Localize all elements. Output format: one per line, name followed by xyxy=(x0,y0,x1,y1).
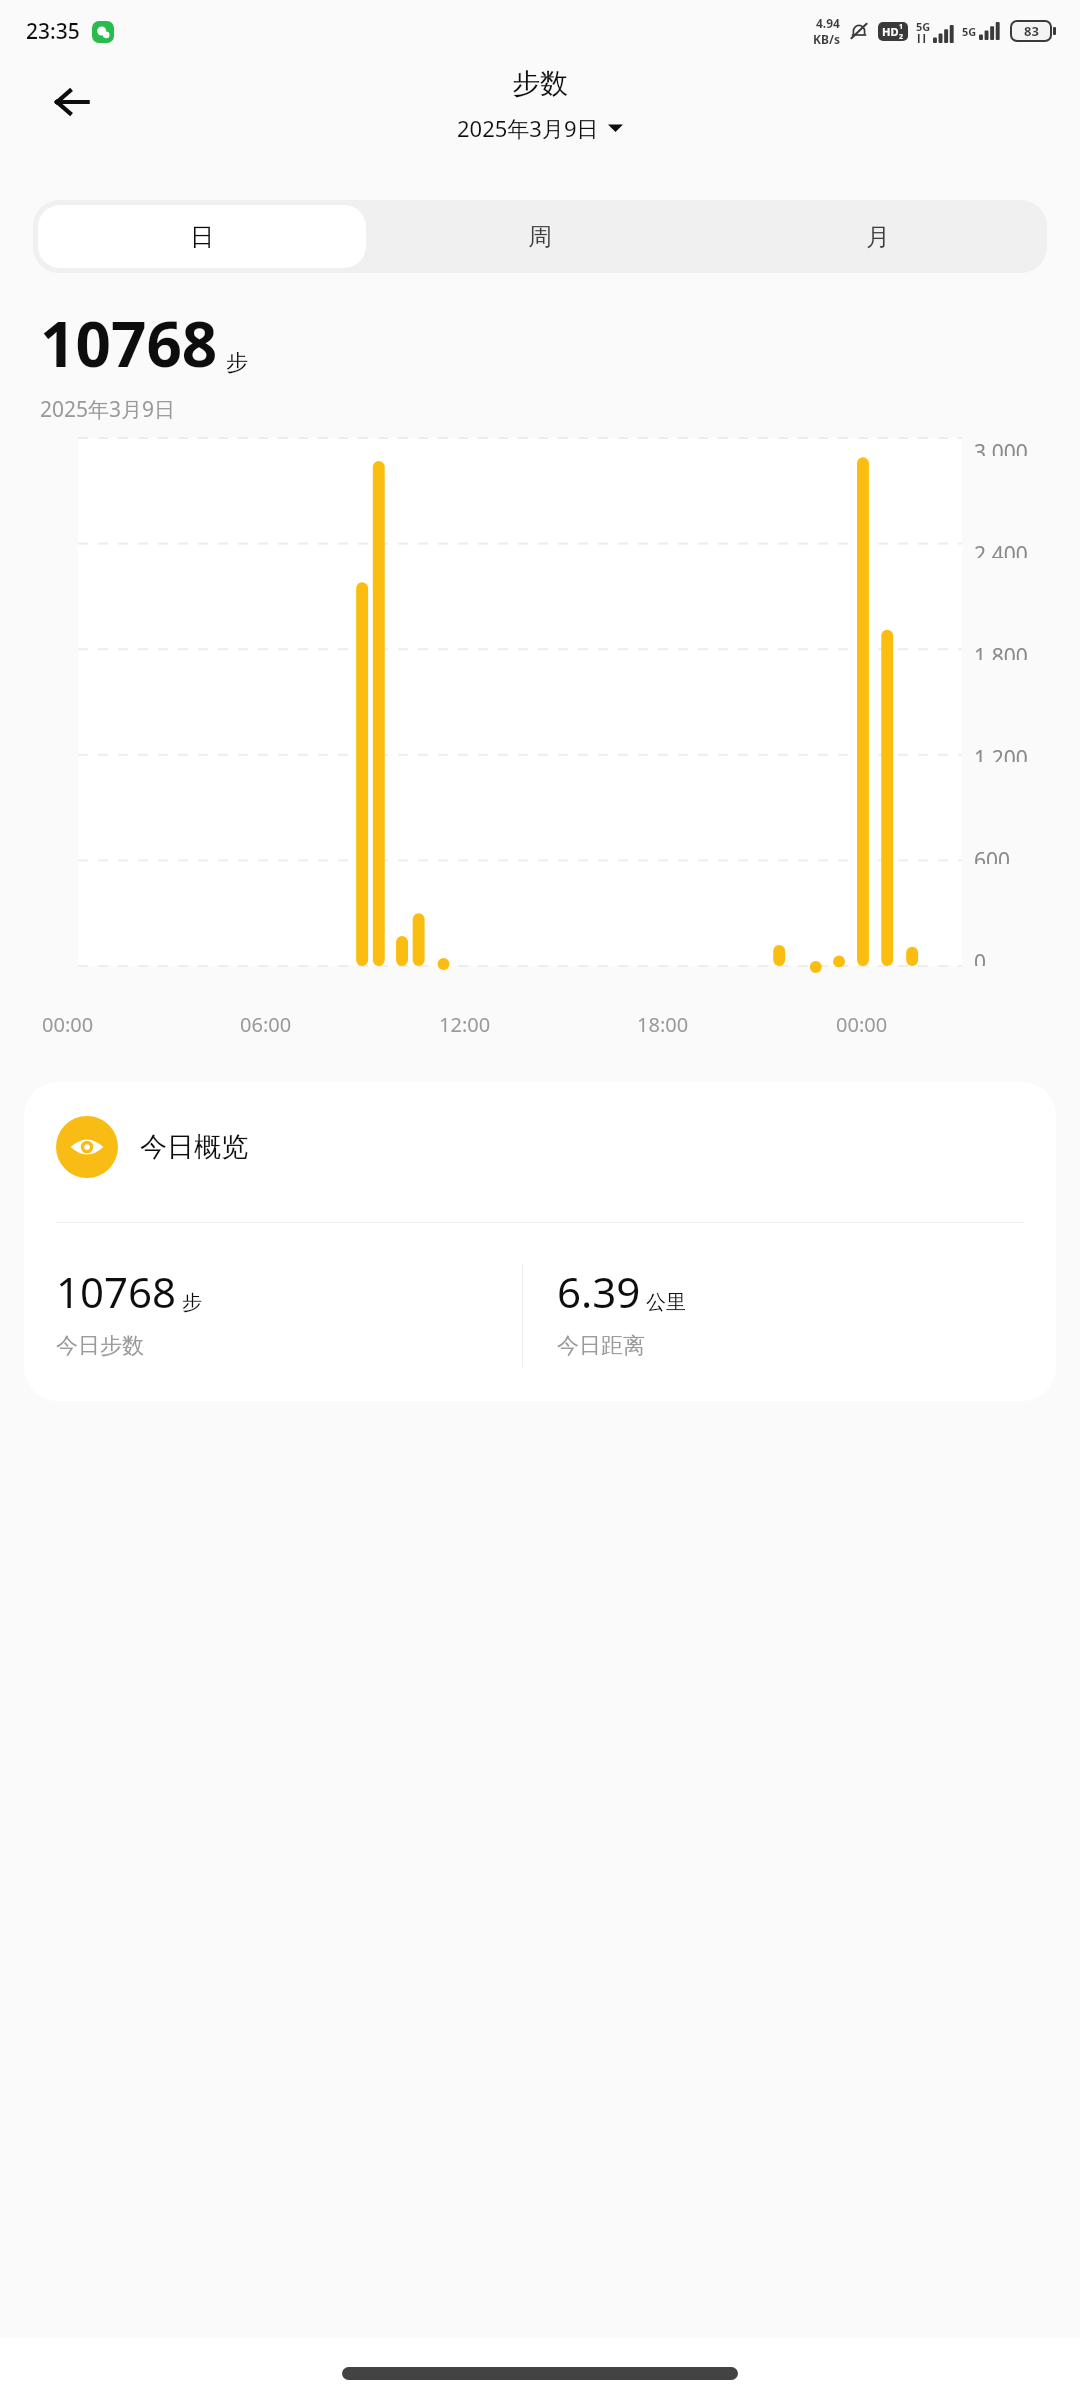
staticText: 06:00 xyxy=(240,1011,292,1038)
staticText: 1,200 xyxy=(974,744,1028,762)
staticText: 今日距离 xyxy=(557,1332,645,1360)
staticText: 今日步数 xyxy=(56,1332,144,1360)
staticText: 今日概览 xyxy=(140,1130,248,1164)
button[interactable]: 2025年3月9日 xyxy=(451,111,629,145)
staticText: HD xyxy=(882,24,899,39)
staticText: 00:00 xyxy=(42,1011,94,1038)
button[interactable]: Back xyxy=(40,70,104,134)
button[interactable]: 月 xyxy=(714,205,1042,268)
staticText: 公里 xyxy=(646,1290,686,1315)
staticText: 18:00 xyxy=(637,1011,689,1038)
staticText: 600 xyxy=(974,846,1011,864)
staticText: 周 xyxy=(528,222,552,252)
staticText: KB/s xyxy=(813,31,840,47)
staticText: 12:00 xyxy=(439,1011,491,1038)
staticText: 1,800 xyxy=(974,642,1028,660)
staticText: 2025年3月9日 xyxy=(40,395,176,424)
staticText: 0 xyxy=(974,948,987,966)
staticText: 00:00 xyxy=(836,1011,888,1038)
staticText: 4.94 xyxy=(816,15,840,31)
staticText: 步 xyxy=(226,349,248,377)
button[interactable]: 日 xyxy=(38,205,366,268)
staticText: 6.39 xyxy=(557,1263,641,1320)
staticText: 10768 xyxy=(40,301,218,385)
staticText: 日 xyxy=(190,222,214,252)
staticText: 5G xyxy=(916,19,931,34)
staticText: 2025年3月9日 xyxy=(457,113,599,143)
staticText: 1 xyxy=(899,22,904,32)
staticText: 步 xyxy=(182,1290,202,1315)
staticText: 23:35 xyxy=(26,17,80,46)
staticText: 2,400 xyxy=(974,540,1028,558)
staticText: 10768 xyxy=(56,1263,177,1320)
staticText: 步数 xyxy=(512,66,568,101)
staticText: 5G xyxy=(962,24,977,39)
staticText: 3,000 xyxy=(974,438,1028,456)
button[interactable]: 今日概览 xyxy=(24,1082,1056,1401)
button[interactable]: 周 xyxy=(376,205,704,268)
staticText: 月 xyxy=(866,222,890,252)
staticText: 2 xyxy=(899,32,904,41)
staticText: 83 xyxy=(1024,22,1039,40)
